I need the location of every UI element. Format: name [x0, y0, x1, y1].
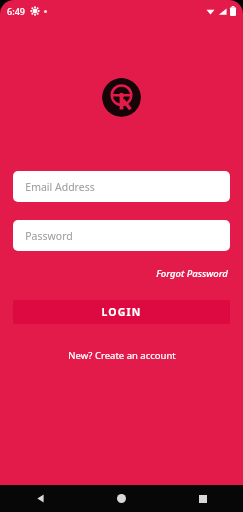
- button[interactable]: App logo: [102, 78, 141, 117]
- staticText: Forgot Password: [156, 267, 228, 280]
- staticText: 6:49: [7, 5, 25, 17]
- staticText: Password: [25, 229, 73, 243]
- staticText: New? Create an account: [68, 349, 176, 362]
- button[interactable]: Recent apps: [162, 485, 243, 512]
- button[interactable]: Forgot Password: [154, 265, 230, 282]
- button[interactable]: Email Address: [13, 171, 230, 202]
- staticText: LOGIN: [101, 305, 142, 319]
- button[interactable]: LOGIN: [13, 300, 230, 324]
- button[interactable]: Password: [13, 220, 230, 251]
- button[interactable]: Back: [0, 485, 81, 512]
- button[interactable]: New? Create an account: [64, 346, 180, 365]
- button[interactable]: Home: [81, 485, 162, 512]
- staticText: Email Address: [25, 180, 95, 194]
